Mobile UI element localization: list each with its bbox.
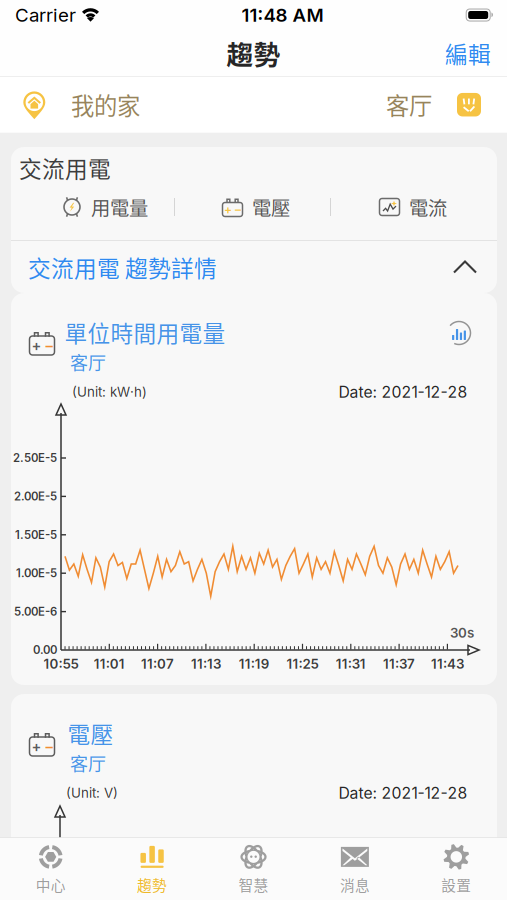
staticText: 11:01	[94, 656, 125, 672]
staticText: 2.50E-5	[13, 451, 57, 465]
staticText: Date: 2021-12-28	[338, 783, 467, 802]
staticText: 1.00E-5	[16, 566, 57, 580]
staticText: 我的家	[71, 88, 140, 122]
staticText: 11:13	[191, 656, 221, 672]
staticText: 電壓	[67, 717, 113, 749]
staticText: 1.50E-5	[15, 528, 57, 542]
button[interactable]: 中心	[0, 836, 101, 900]
staticText: 0.00	[33, 643, 57, 657]
staticText: 客厅	[70, 349, 106, 375]
staticText: (Unit: V)	[66, 785, 118, 801]
staticText: 11:48 AM	[241, 4, 323, 26]
staticText: –	[235, 202, 241, 217]
staticText: 設置	[441, 874, 471, 895]
staticText: 用電量	[91, 193, 148, 221]
staticText: 30s	[450, 625, 474, 641]
staticText: (Unit: kW·h)	[72, 384, 147, 400]
staticText: 11:31	[336, 656, 366, 672]
staticText: 11:25	[286, 656, 318, 672]
staticText: 智慧	[238, 874, 268, 895]
staticText: 客厅	[70, 750, 106, 776]
staticText: 趨勢	[137, 874, 167, 895]
staticText: 單位時間用電量	[64, 316, 225, 348]
button[interactable]: 設置	[406, 836, 507, 900]
staticText: –	[45, 337, 52, 354]
staticText: 11:43	[431, 656, 464, 672]
staticText: 趨勢	[226, 34, 280, 72]
staticText: 10:55	[43, 656, 78, 672]
button[interactable]: 趨勢	[101, 836, 203, 900]
staticText: 電流	[409, 193, 447, 221]
staticText: 11:37	[383, 656, 415, 672]
staticText: 5.00E-6	[14, 605, 57, 618]
staticText: 編輯	[445, 37, 491, 69]
button[interactable]: +	[219, 188, 293, 226]
button[interactable]: 智慧	[203, 836, 304, 900]
staticText: 中心	[36, 874, 66, 895]
button[interactable]: 客厅	[378, 80, 507, 130]
staticText: 交流用電	[19, 151, 111, 184]
button[interactable]: 編輯	[429, 27, 507, 79]
staticText: 交流用電 趨勢詳情	[28, 251, 217, 283]
staticText: +	[31, 738, 41, 755]
staticText: 消息	[340, 874, 370, 895]
staticText: 電壓	[252, 193, 290, 221]
staticText: 2.00E-5	[14, 489, 57, 503]
button[interactable]: 交流用電 趨勢詳情	[11, 241, 497, 293]
staticText: 11:19	[239, 656, 270, 672]
button[interactable]: 我的家	[0, 80, 148, 130]
button[interactable]: Refresh	[446, 320, 472, 346]
button[interactable]: 用電量	[59, 188, 151, 226]
staticText: 客厅	[386, 88, 432, 122]
staticText: –	[45, 738, 52, 755]
button[interactable]: 電流	[376, 188, 450, 226]
button[interactable]: 消息	[304, 836, 406, 900]
staticText: +	[31, 337, 41, 354]
staticText: +	[224, 202, 232, 217]
staticText: Date: 2021-12-28	[338, 382, 467, 401]
staticText: 11:07	[141, 656, 174, 672]
staticText: Carrier	[15, 4, 76, 26]
